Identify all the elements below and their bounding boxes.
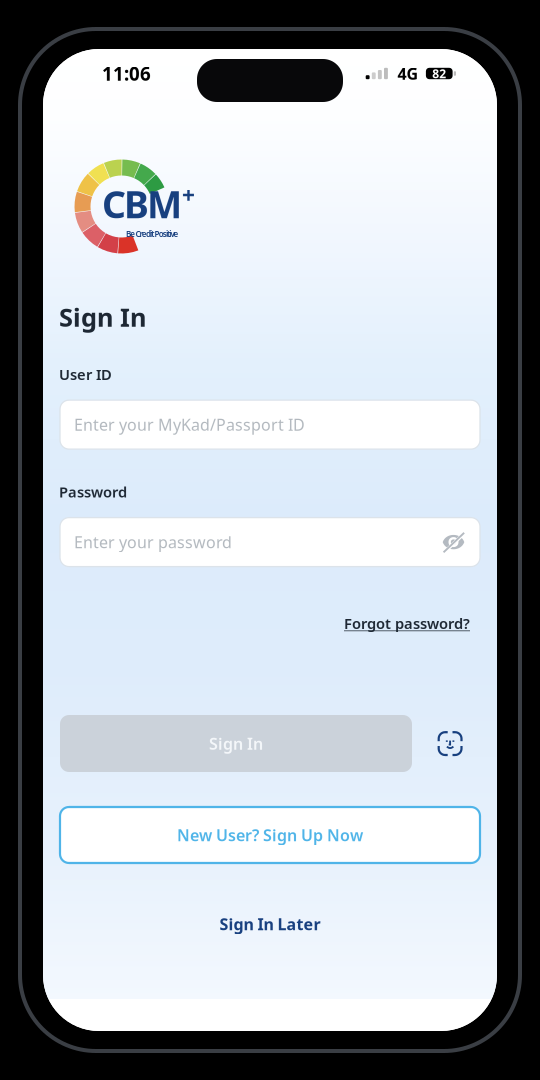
- staticText: Enter your MyKad/Passport ID: [74, 414, 305, 435]
- staticText: Password: [59, 482, 127, 502]
- staticText: Be Credit Positive: [126, 229, 179, 239]
- staticText: Enter your password: [74, 531, 232, 553]
- button[interactable]: Forgot password?: [344, 614, 470, 633]
- staticText: Sign In: [59, 300, 146, 334]
- staticText: 11:06: [102, 61, 151, 86]
- staticText: +: [182, 180, 195, 210]
- button[interactable]: New User? Sign Up Now: [60, 807, 480, 863]
- staticText: 82: [432, 65, 446, 81]
- staticText: 4G: [397, 63, 418, 84]
- staticText: CBM: [102, 179, 182, 229]
- staticText: Sign In Later: [219, 913, 320, 935]
- button[interactable]: Sign In Later: [60, 902, 480, 946]
- button[interactable]: Sign In: [60, 715, 412, 772]
- button[interactable]: Sign in with Face ID: [429, 715, 471, 772]
- staticText: Forgot password?: [344, 614, 470, 633]
- staticText: Sign In: [209, 733, 263, 754]
- staticText: New User? Sign Up Now: [177, 824, 363, 846]
- staticText: User ID: [59, 365, 112, 384]
